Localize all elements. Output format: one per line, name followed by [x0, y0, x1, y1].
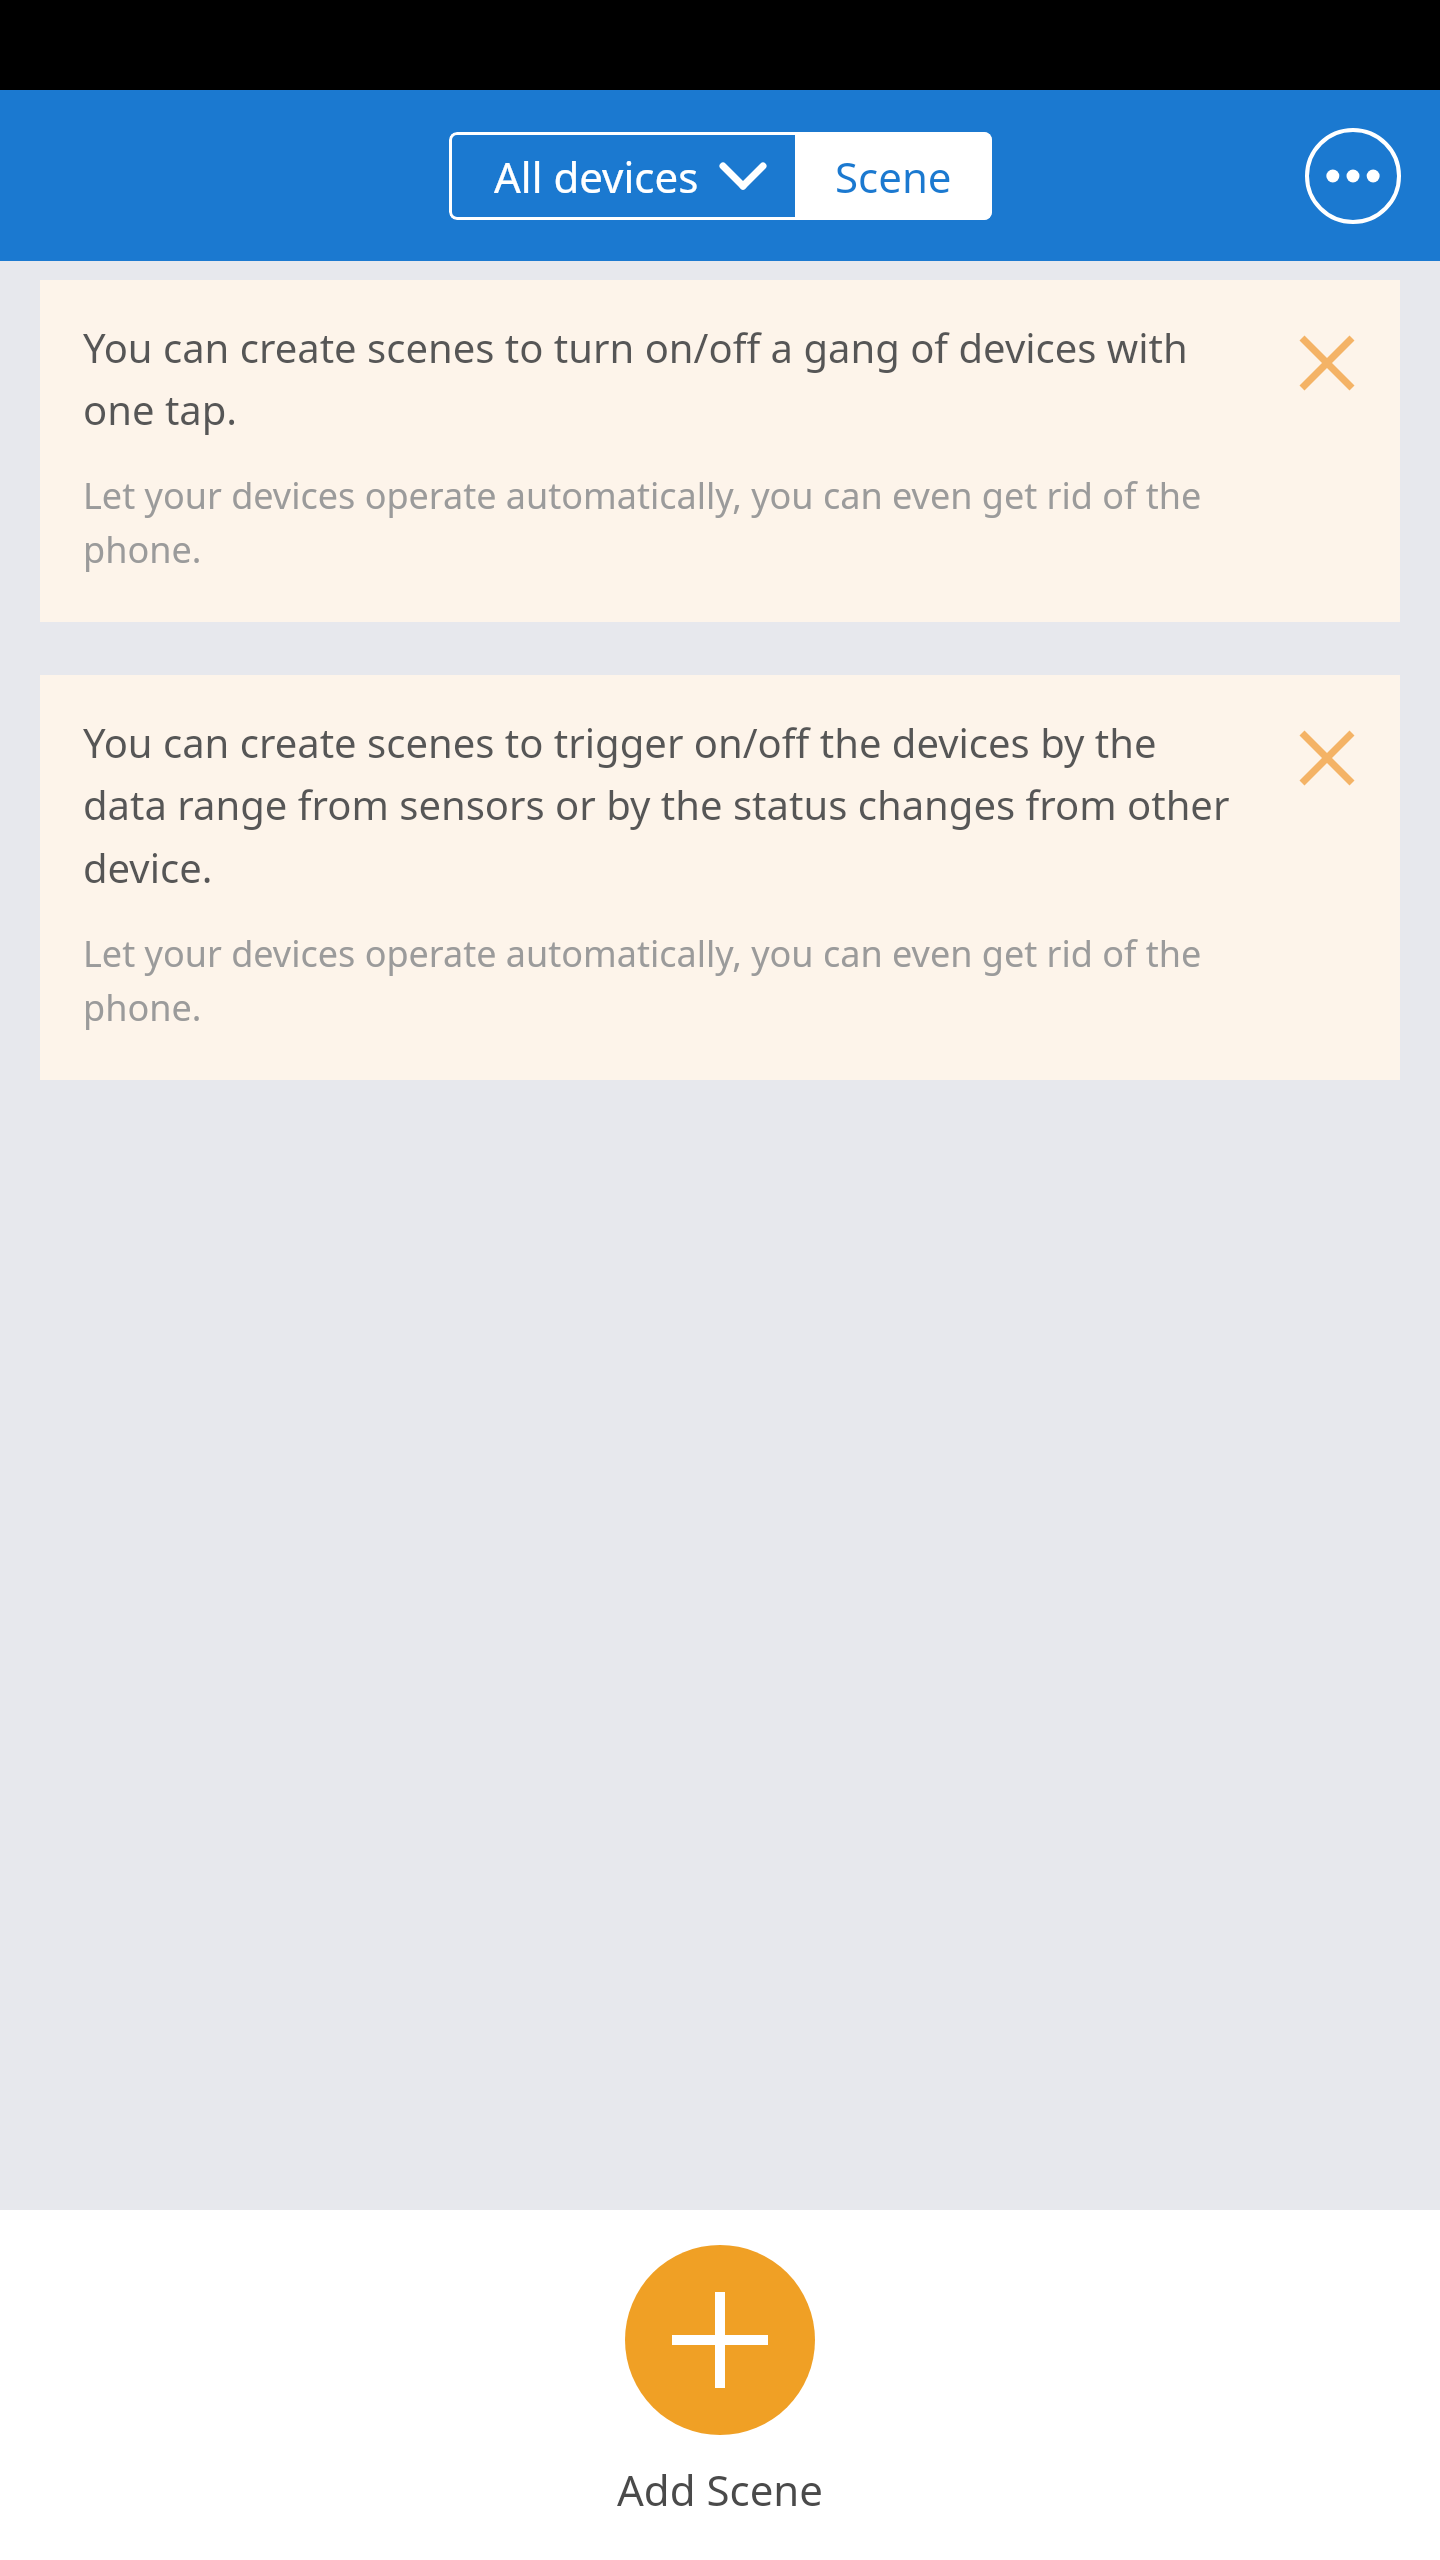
button[interactable]: You can create scenes to turn on/off a g…: [40, 280, 1400, 622]
button[interactable]: More options: [1298, 121, 1408, 231]
staticText: Let your devices operate automatically, …: [83, 471, 1244, 574]
staticText: Let your devices operate automatically, …: [83, 929, 1244, 1032]
staticText: Scene: [835, 148, 952, 205]
staticText: You can create scenes to trigger on/off …: [83, 715, 1244, 895]
staticText: Add Scene: [617, 2461, 823, 2518]
button[interactable]: Add Scene: [625, 2245, 815, 2435]
staticText: All devices: [494, 148, 699, 205]
staticText: You can create scenes to turn on/off a g…: [83, 320, 1244, 437]
button[interactable]: Scene: [795, 132, 992, 220]
button[interactable]: Dismiss: [1284, 320, 1370, 406]
button[interactable]: Dismiss: [1284, 715, 1370, 801]
button[interactable]: All devices: [449, 132, 795, 220]
button[interactable]: You can create scenes to trigger on/off …: [40, 675, 1400, 1080]
